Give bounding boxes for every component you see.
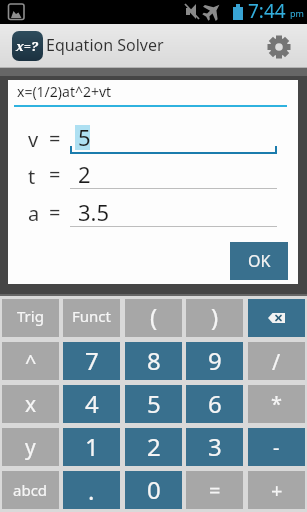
staticText: . [88,474,95,507]
button[interactable]: 6 [186,385,243,423]
staticText: 3.5 [78,197,110,227]
button[interactable]: + [248,471,305,509]
staticText: 7 [85,344,99,377]
staticText: 1 [85,430,99,463]
button[interactable]: 7 [63,342,120,380]
button[interactable]: Trig [2,299,59,337]
button[interactable]: y [2,428,59,466]
button[interactable]: Funct [63,299,120,337]
button[interactable]: ) [186,299,243,337]
staticText: - [273,434,280,461]
staticText: 6 [208,387,222,420]
button[interactable]: x [2,385,59,423]
button[interactable]: = [186,471,243,509]
staticText: = [49,125,61,152]
staticText: * [271,390,283,417]
staticText: ) [211,300,219,333]
staticText: x=(1/2)at^2+vt [17,82,112,101]
staticText: + [271,477,283,504]
staticText: x=? [16,37,39,55]
staticText: ( [150,300,158,333]
staticText: v [28,126,39,153]
button[interactable]: 9 [186,342,243,380]
button[interactable]: 1 [63,428,120,466]
button[interactable] [70,195,285,227]
button[interactable]: abcd [2,471,59,509]
button[interactable]: OK [230,242,288,280]
staticText: pm [290,7,304,19]
staticText: Funct [72,306,111,326]
button[interactable]: / [248,342,305,380]
staticText: 8 [147,344,161,377]
button[interactable]: 2 [125,428,182,466]
staticText: 9 [208,344,222,377]
button[interactable]: * [248,385,305,423]
staticText: Trig [17,306,44,326]
staticText: 2 [147,430,161,463]
staticText: / [272,346,281,376]
button[interactable]: - [248,428,305,466]
staticText: Equation Solver [46,34,164,56]
button[interactable] [70,120,285,155]
button[interactable]: x=(1/2)at^2+vt [14,80,287,107]
staticText: = [49,161,61,188]
button[interactable]: 3 [186,428,243,466]
staticText: a [28,200,40,227]
staticText: t [28,163,36,190]
button[interactable]: ^ [2,342,59,380]
staticText: OK [248,250,271,272]
staticText: 0 [147,473,161,506]
staticText: = [209,477,221,504]
button[interactable]: 0 [125,471,182,509]
staticText: abcd [13,480,48,500]
staticText: 7:44 [248,0,286,22]
staticText: 3 [208,430,222,463]
button[interactable] [70,157,285,189]
button[interactable]: 8 [125,342,182,380]
staticText: x [25,390,37,419]
staticText: 2 [78,159,91,189]
staticText: 5 [78,122,91,152]
button[interactable]: ( [125,299,182,337]
staticText: 5 [147,387,161,420]
staticText: ^ [25,348,37,375]
button[interactable] [248,299,305,337]
button[interactable]: . [63,471,120,509]
staticText: = [49,199,61,226]
button[interactable] [262,29,296,63]
button[interactable]: 4 [63,385,120,423]
staticText: y [25,433,36,462]
button[interactable]: 5 [125,385,182,423]
staticText: 4 [85,387,99,420]
